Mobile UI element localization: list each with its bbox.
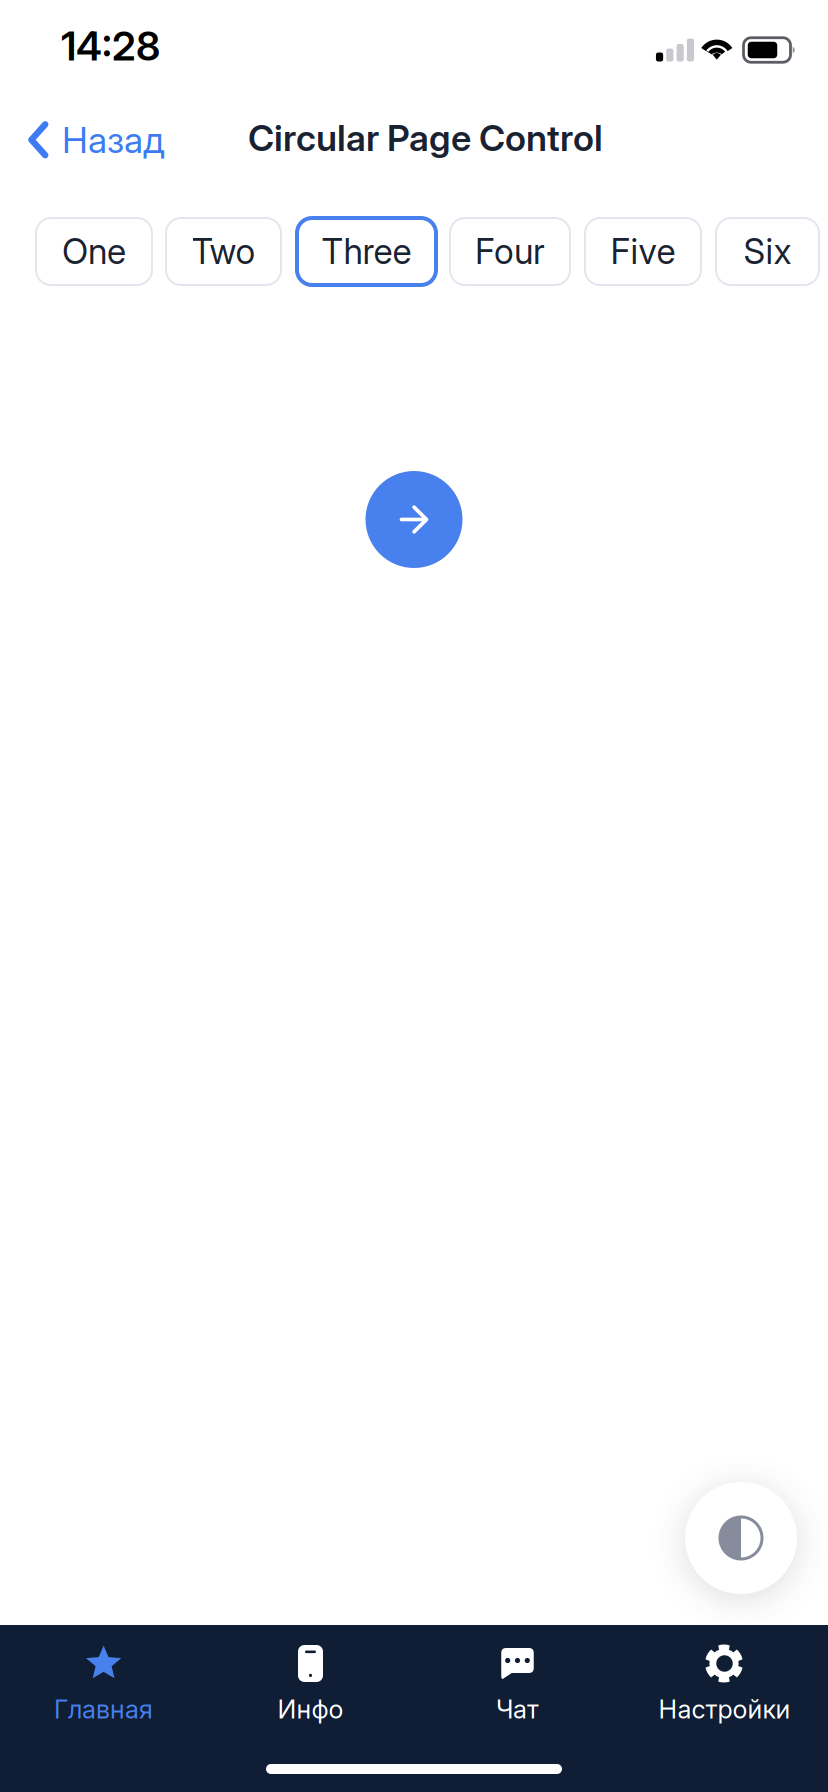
button[interactable]: Next page xyxy=(365,471,462,568)
button[interactable]: Чат xyxy=(414,1625,621,1729)
staticText: Назад xyxy=(62,118,165,162)
staticText: Чат xyxy=(496,1694,539,1725)
button[interactable]: Инфо xyxy=(207,1625,414,1729)
staticText: 14:28 xyxy=(61,22,160,70)
button[interactable]: Настройки xyxy=(621,1625,828,1729)
button[interactable]: Four xyxy=(450,218,570,285)
button[interactable]: One xyxy=(36,218,152,285)
button[interactable]: Five xyxy=(585,218,701,285)
button[interactable]: Six xyxy=(716,218,819,285)
button[interactable]: Toggle appearance xyxy=(685,1482,797,1594)
staticText: Four xyxy=(475,230,545,272)
button[interactable]: Two xyxy=(166,218,281,285)
staticText: Three xyxy=(321,230,411,272)
staticText: Two xyxy=(191,230,255,272)
staticText: Настройки xyxy=(658,1694,790,1725)
staticText: One xyxy=(62,230,126,272)
button[interactable]: Назад xyxy=(0,102,185,178)
staticText: Circular Page Control xyxy=(248,116,603,160)
staticText: Five xyxy=(610,230,675,272)
staticText: Главная xyxy=(54,1694,153,1725)
staticText: Six xyxy=(743,230,791,272)
button[interactable]: Главная xyxy=(0,1625,207,1729)
button[interactable]: Three xyxy=(297,218,436,285)
staticText: Инфо xyxy=(277,1694,343,1725)
